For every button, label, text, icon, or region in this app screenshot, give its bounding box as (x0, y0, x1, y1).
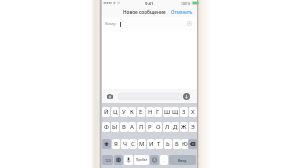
staticText: Д (173, 123, 178, 131)
button[interactable]: З (180, 107, 188, 117)
button[interactable]: О (154, 122, 162, 132)
staticText: Е (139, 108, 143, 116)
button[interactable]: Х (189, 107, 197, 117)
staticText: Ж (181, 123, 187, 131)
button[interactable]: Н (146, 107, 154, 117)
button[interactable]: П (137, 122, 145, 132)
button[interactable] (102, 17, 197, 31)
staticText: Ч (123, 140, 128, 148)
staticText: Ь (166, 140, 170, 148)
staticText: Э (191, 123, 195, 131)
staticText: Ф (104, 123, 109, 131)
staticText: К (130, 108, 134, 116)
button[interactable]: Ю (181, 139, 189, 149)
staticText: Новое сообщение (123, 9, 166, 15)
button[interactable]: В (120, 122, 128, 132)
staticText: Т (157, 140, 161, 148)
button[interactable]: Щ (171, 107, 179, 117)
staticText: 100 % (181, 1, 191, 5)
button[interactable]: Й (102, 107, 110, 117)
staticText: А (130, 123, 134, 131)
button[interactable]: Е (137, 107, 145, 117)
button[interactable]: Отменить (171, 7, 196, 16)
staticText: П (139, 123, 144, 131)
button[interactable]: Л (163, 122, 171, 132)
staticText: И (149, 140, 154, 148)
button[interactable]: . (160, 155, 168, 165)
button[interactable]: Д (171, 122, 179, 132)
staticText: Л (165, 123, 170, 131)
button[interactable]: Ввод (169, 155, 196, 165)
staticText: О (156, 123, 161, 131)
staticText: Б (175, 140, 179, 148)
button[interactable]: Я (112, 139, 120, 149)
staticText: Ю (182, 140, 188, 148)
staticText: М (139, 140, 145, 148)
button[interactable]: Send (183, 93, 190, 100)
button[interactable]: Б (173, 139, 181, 149)
button[interactable]: Change language (114, 155, 123, 165)
staticText: З (182, 108, 186, 116)
staticText: Р (148, 123, 152, 131)
button[interactable]: Ф (102, 122, 110, 132)
button[interactable]: Ц (111, 107, 119, 117)
staticText: Й (104, 108, 109, 116)
button[interactable]: А (128, 122, 136, 132)
staticText: Н (148, 108, 153, 116)
button[interactable]: Ч (121, 139, 129, 149)
staticText: Х (191, 108, 195, 116)
button[interactable]: Ы (111, 122, 119, 132)
button[interactable]: У (120, 107, 128, 117)
button[interactable]: Shift (102, 139, 111, 149)
staticText: 123 (105, 158, 111, 163)
button[interactable]: Р (146, 122, 154, 132)
button[interactable]: Пробел (134, 155, 149, 165)
staticText: У (122, 108, 126, 116)
staticText: . (164, 158, 165, 163)
button[interactable]: И (147, 139, 155, 149)
staticText: Ш (164, 108, 171, 116)
staticText: Ц (113, 108, 118, 116)
staticText: Я (114, 140, 118, 148)
staticText: Ввод (178, 158, 187, 163)
button[interactable]: Ж (180, 122, 188, 132)
staticText: Отменить (171, 9, 193, 15)
button[interactable]: Dictation (124, 155, 133, 165)
staticText: Ы (112, 123, 118, 131)
staticText: 9:41 (145, 1, 154, 7)
button[interactable]: К (128, 107, 136, 117)
staticText: В (122, 123, 126, 131)
staticText: С (131, 140, 135, 148)
button[interactable]: С (129, 139, 137, 149)
button[interactable]: Backspace (188, 139, 197, 149)
staticText: Пробел (136, 158, 148, 162)
button[interactable]: Add recipient (187, 21, 192, 26)
button[interactable]: Ш (163, 107, 171, 117)
staticText: Кому: (105, 21, 117, 27)
button[interactable]: 123 (102, 155, 113, 165)
staticText: Г (156, 108, 160, 116)
button[interactable]: Emoji (150, 155, 159, 165)
button[interactable]: Ь (164, 139, 172, 149)
button[interactable]: Camera (107, 93, 113, 100)
button[interactable]: Э (189, 122, 197, 132)
staticText: Щ (172, 108, 179, 116)
button[interactable]: М (138, 139, 146, 149)
button[interactable]: Т (155, 139, 163, 149)
button[interactable]: Г (154, 107, 162, 117)
